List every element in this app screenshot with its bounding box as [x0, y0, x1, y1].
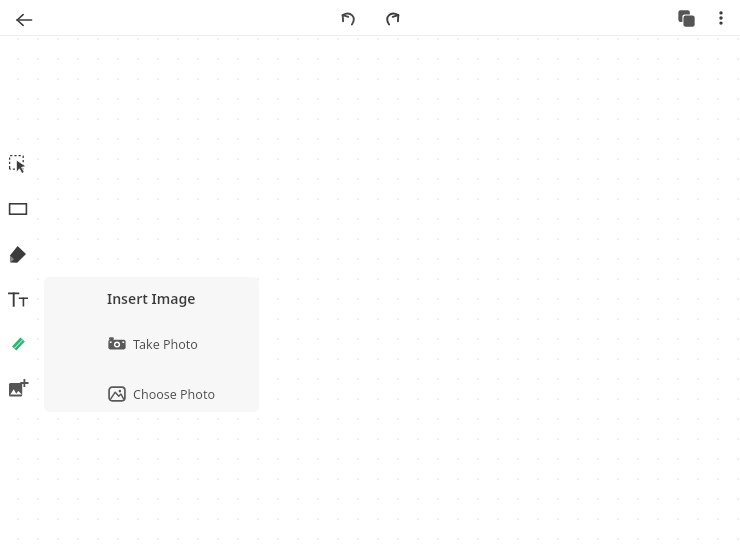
staticText: Take Photo	[133, 336, 198, 353]
button[interactable]: Pen tool	[0, 231, 35, 276]
button[interactable]: Rectangle tool	[0, 186, 35, 231]
button[interactable]: Insert image	[0, 366, 35, 411]
button[interactable]: Choose Photo	[44, 378, 259, 410]
button[interactable]: Eraser tool	[0, 321, 35, 366]
button[interactable]: Select tool	[0, 141, 35, 186]
staticText: Insert Image	[107, 289, 196, 308]
button[interactable]: Text tool	[0, 276, 35, 321]
button[interactable]: Back	[8, 4, 40, 36]
button[interactable]: Take Photo	[44, 328, 259, 360]
button[interactable]: Undo	[332, 2, 364, 34]
button[interactable]: Layers	[670, 2, 702, 34]
button[interactable]: More options	[705, 2, 737, 34]
button[interactable]: Redo	[376, 2, 408, 34]
staticText: Choose Photo	[133, 386, 215, 403]
